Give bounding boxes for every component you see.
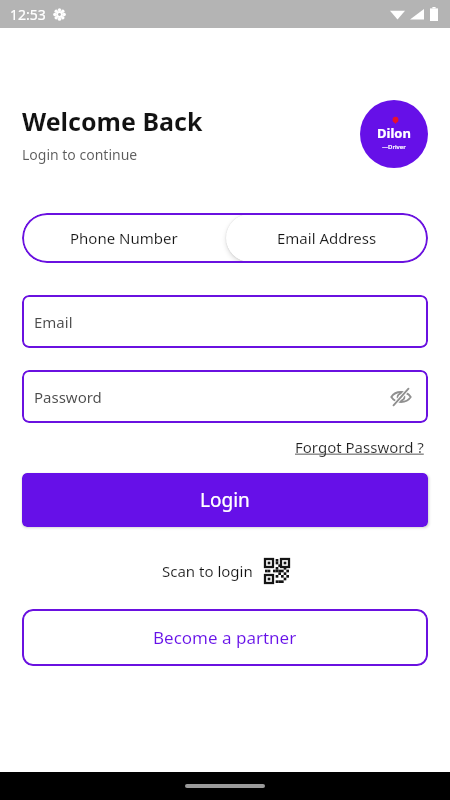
- staticText: Login: [200, 487, 250, 513]
- staticText: 12:53: [10, 5, 46, 24]
- button[interactable]: Forgot Password ?: [291, 433, 428, 461]
- staticText: Password: [34, 387, 102, 407]
- staticText: Dilon: [377, 124, 411, 142]
- other: Scan QR code: [265, 559, 289, 583]
- staticText: Email: [34, 312, 73, 332]
- button[interactable]: Become a partner: [22, 609, 428, 666]
- staticText: Welcome Back: [22, 104, 203, 138]
- staticText: Become a partner: [153, 626, 297, 649]
- staticText: Forgot Password ?: [295, 437, 424, 457]
- button[interactable]: Phone Number: [22, 213, 225, 263]
- staticText: Login to continue: [22, 145, 138, 164]
- button[interactable]: Password: [22, 370, 428, 423]
- button[interactable]: Show password: [388, 384, 414, 410]
- button[interactable]: Email Address: [226, 214, 427, 262]
- button[interactable]: Email: [22, 295, 428, 348]
- button[interactable]: Scan to login: [0, 559, 450, 583]
- staticText: Phone Number: [70, 228, 178, 248]
- staticText: —Driver: [382, 143, 406, 151]
- staticText: Scan to login: [162, 561, 253, 581]
- staticText: Email Address: [277, 228, 377, 248]
- button[interactable]: Login: [22, 473, 428, 527]
